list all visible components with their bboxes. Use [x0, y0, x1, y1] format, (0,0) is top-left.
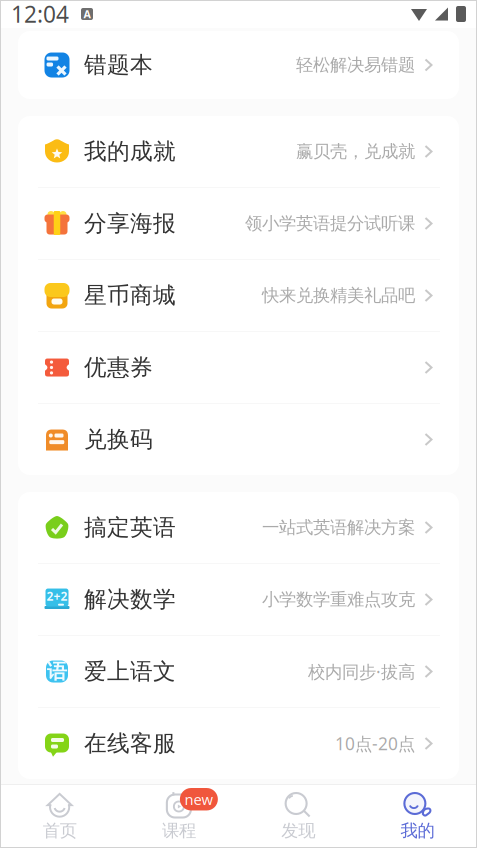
- staticText: 发现: [281, 820, 315, 841]
- staticText: 赢贝壳，兑成就: [296, 141, 415, 162]
- staticText: 爱上语文: [84, 658, 176, 685]
- staticText: 12:04: [11, 0, 69, 29]
- button[interactable]: 搞定英语: [18, 492, 459, 563]
- staticText: 快来兑换精美礼品吧: [262, 285, 415, 306]
- staticText: 2+2: [46, 588, 67, 604]
- staticText: 我的成就: [84, 138, 176, 165]
- staticText: 领小学英语提分试听课: [245, 213, 415, 234]
- button[interactable]: 兑换码: [18, 404, 459, 475]
- staticText: 语: [47, 659, 67, 684]
- staticText: A: [83, 7, 90, 21]
- staticText: 优惠券: [84, 354, 153, 381]
- staticText: 首页: [43, 820, 77, 841]
- button[interactable]: 分享海报: [18, 188, 459, 259]
- button[interactable]: 我的成就: [18, 116, 459, 187]
- staticText: 校内同步·拔高: [308, 660, 415, 683]
- staticText: 分享海报: [84, 210, 176, 237]
- staticText: 10点-20点: [335, 732, 415, 755]
- button[interactable]: 首页: [0, 785, 119, 848]
- staticText: 一站式英语解决方案: [262, 517, 415, 538]
- button[interactable]: 星币商城: [18, 260, 459, 331]
- staticText: 轻松解决易错题: [296, 54, 415, 76]
- button[interactable]: 发现: [238, 785, 358, 848]
- button[interactable]: 错题本: [18, 31, 459, 99]
- button[interactable]: 优惠券: [18, 332, 459, 403]
- staticText: 在线客服: [84, 730, 176, 757]
- staticText: 错题本: [84, 51, 153, 79]
- staticText: 搞定英语: [84, 514, 176, 541]
- staticText: 兑换码: [84, 426, 153, 453]
- button[interactable]: 课程: [119, 785, 238, 848]
- button[interactable]: 2+2: [18, 564, 459, 635]
- staticText: new: [184, 789, 213, 809]
- button[interactable]: 语: [18, 636, 459, 707]
- staticText: 课程: [162, 820, 196, 841]
- staticText: 星币商城: [84, 282, 176, 309]
- staticText: 解决数学: [84, 586, 176, 613]
- button[interactable]: 在线客服: [18, 708, 459, 779]
- staticText: 我的: [400, 820, 434, 841]
- staticText: 小学数学重难点攻克: [262, 589, 415, 610]
- button[interactable]: 我的: [358, 785, 477, 848]
